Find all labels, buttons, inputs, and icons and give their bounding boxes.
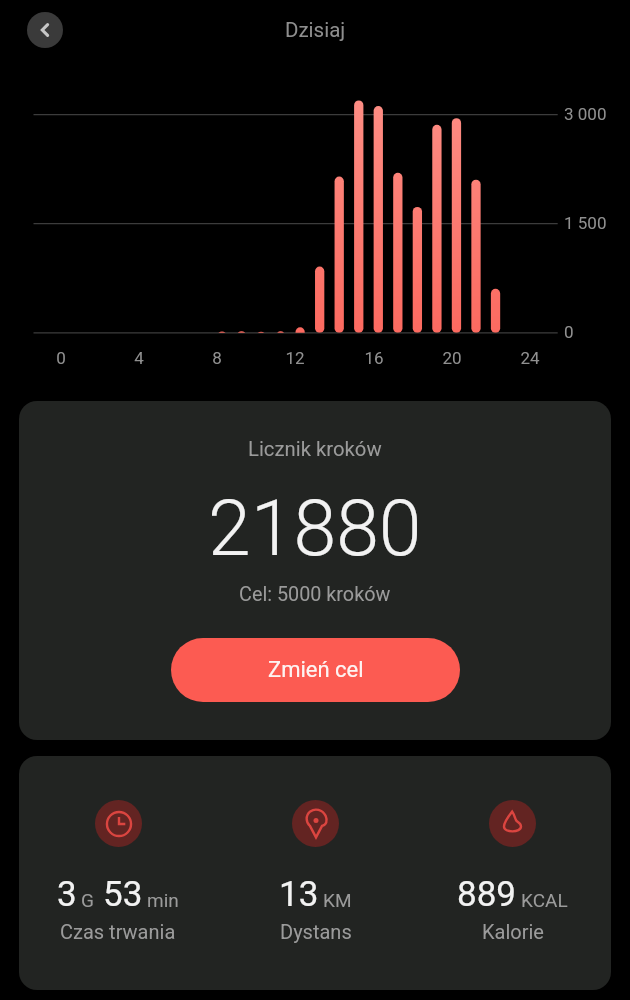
staticText: Licznik kroków <box>248 437 382 461</box>
staticText: 4 <box>119 348 159 368</box>
staticText: Kalorie <box>482 920 544 943</box>
staticText: 20 <box>432 348 472 368</box>
staticText: KM <box>323 889 352 911</box>
staticText: Czas trwania <box>60 920 176 943</box>
staticText: 3 000 <box>564 104 607 124</box>
staticText: Cel: 5000 kroków <box>239 583 391 606</box>
staticText: 1 500 <box>564 213 607 233</box>
staticText: min <box>147 889 179 911</box>
staticText: 8 <box>197 348 237 368</box>
staticText: Dystans <box>280 920 352 943</box>
staticText: 53 <box>103 874 143 915</box>
staticText: 3 <box>57 874 77 915</box>
staticText: KCAL <box>521 889 568 911</box>
staticText: Zmień cel <box>268 657 364 683</box>
staticText: 0 <box>41 348 81 368</box>
button[interactable]: Back <box>27 12 63 48</box>
staticText: 24 <box>510 348 550 368</box>
staticText: 889 <box>457 874 517 915</box>
staticText: 13 <box>279 874 319 915</box>
staticText: Dzisiaj <box>285 18 346 42</box>
staticText: 0 <box>564 322 574 342</box>
staticText: G <box>81 889 94 911</box>
staticText: 16 <box>354 348 394 368</box>
staticText: 12 <box>275 348 315 368</box>
staticText: 21880 <box>208 484 422 574</box>
button[interactable]: Zmień cel <box>171 638 460 702</box>
